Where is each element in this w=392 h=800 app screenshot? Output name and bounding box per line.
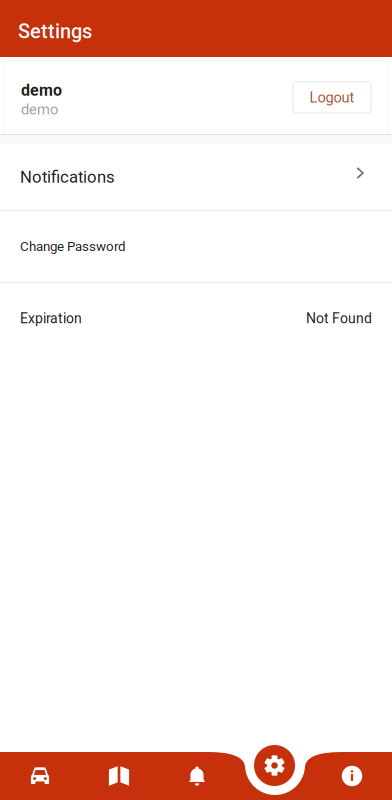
button[interactable]: Change Password (0, 211, 392, 282)
button[interactable]: Logout (293, 82, 371, 113)
staticText: Expiration (20, 310, 82, 327)
staticText: Not Found (306, 310, 372, 327)
button[interactable]: Info (312, 752, 392, 800)
staticText: demo (21, 81, 62, 100)
staticText: demo (21, 101, 58, 118)
button[interactable]: Settings (254, 745, 295, 786)
staticText: Change Password (20, 239, 126, 254)
staticText: Settings (18, 20, 92, 43)
button[interactable]: Map (80, 752, 158, 800)
button[interactable]: Vehicles (0, 752, 80, 800)
button[interactable]: Notifications (0, 144, 392, 210)
button[interactable]: Alerts (158, 752, 236, 800)
staticText: Notifications (20, 167, 115, 187)
staticText: Logout (309, 89, 354, 106)
